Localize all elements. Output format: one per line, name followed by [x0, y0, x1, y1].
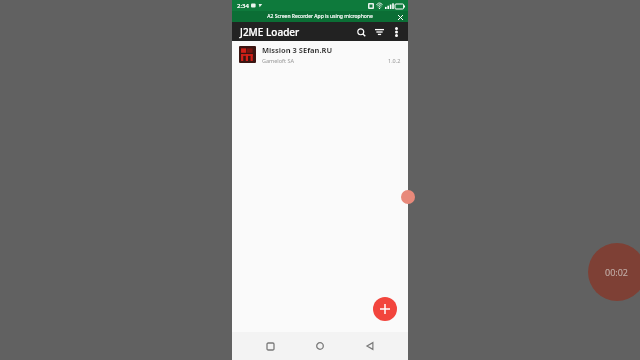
button[interactable]: Add — [373, 297, 397, 321]
staticText: Mission 3 SEfan.RU — [262, 45, 333, 55]
button[interactable]: Mission 3 SEfan.RU — [232, 41, 408, 67]
staticText: 00:02 — [605, 266, 629, 278]
button[interactable]: Home — [310, 336, 330, 356]
button[interactable]: Dismiss notification — [396, 13, 404, 21]
staticText: J2ME Loader — [240, 25, 300, 39]
button[interactable]: Recents — [260, 336, 280, 356]
staticText: 1.0.2 — [388, 57, 401, 64]
staticText: A2 Screen Recorder App is using micropho… — [267, 13, 373, 20]
button[interactable]: A2 Screen Recorder App is using micropho… — [232, 11, 408, 22]
button[interactable]: Search — [352, 23, 370, 41]
button[interactable]: Back — [360, 336, 380, 356]
staticText: 2:34 — [237, 2, 249, 10]
button[interactable]: Recorder overlay — [401, 190, 415, 204]
button[interactable]: More options — [388, 24, 404, 40]
button[interactable]: Sort — [370, 23, 388, 41]
button[interactable]: Recording timer — [588, 243, 640, 301]
staticText: Gameloft SA — [262, 57, 294, 64]
